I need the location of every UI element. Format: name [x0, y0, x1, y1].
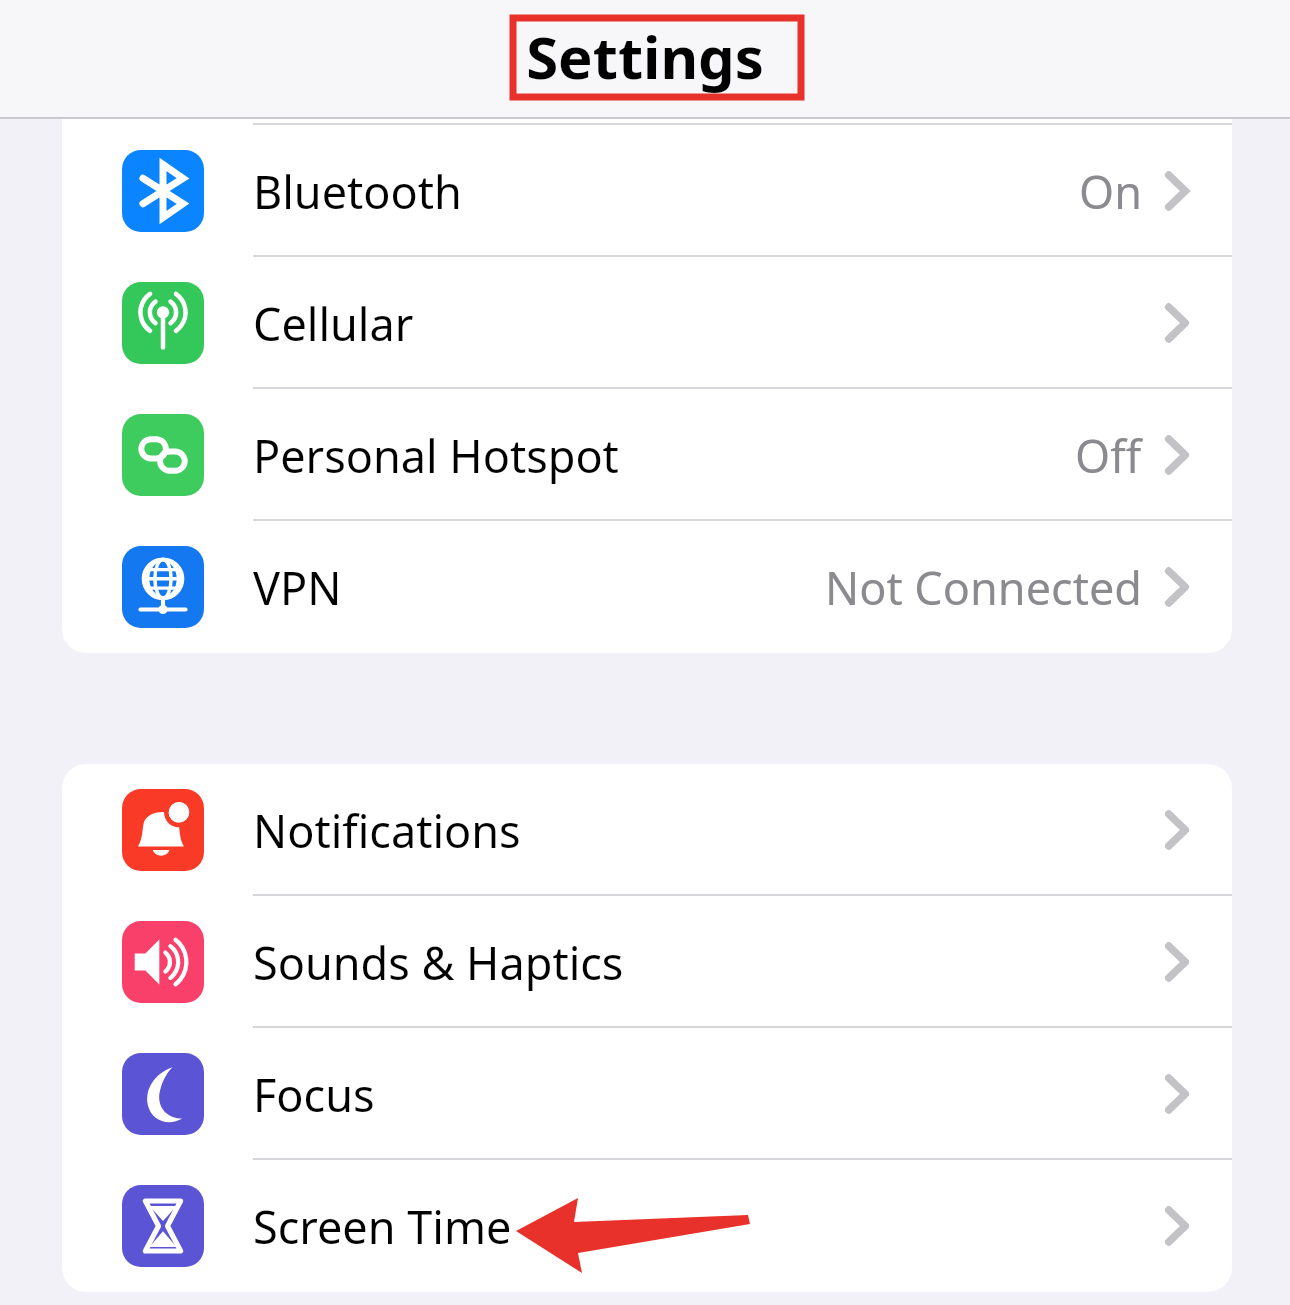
button[interactable]: Screen Time — [62, 1160, 1232, 1292]
staticText: Off — [1075, 425, 1142, 486]
staticText: Focus — [253, 1064, 375, 1125]
button[interactable]: Sounds & Haptics — [62, 896, 1232, 1028]
button[interactable]: Personal Hotspot — [62, 389, 1232, 521]
button[interactable]: VPN — [62, 521, 1232, 653]
button[interactable]: Notifications — [62, 764, 1232, 896]
button[interactable]: Focus — [62, 1028, 1232, 1160]
staticText: Cellular — [253, 293, 414, 354]
staticText: Bluetooth — [253, 161, 462, 222]
staticText: Personal Hotspot — [253, 425, 619, 486]
button[interactable]: Cellular — [62, 257, 1232, 389]
staticText: On — [1079, 161, 1142, 222]
staticText: Notifications — [253, 800, 521, 861]
button[interactable]: Bluetooth — [62, 125, 1232, 257]
staticText: Screen Time — [253, 1196, 512, 1257]
staticText: Sounds & Haptics — [253, 932, 624, 993]
staticText: Not Connected — [825, 557, 1142, 618]
staticText: Settings — [526, 17, 764, 96]
staticText: VPN — [253, 557, 342, 618]
